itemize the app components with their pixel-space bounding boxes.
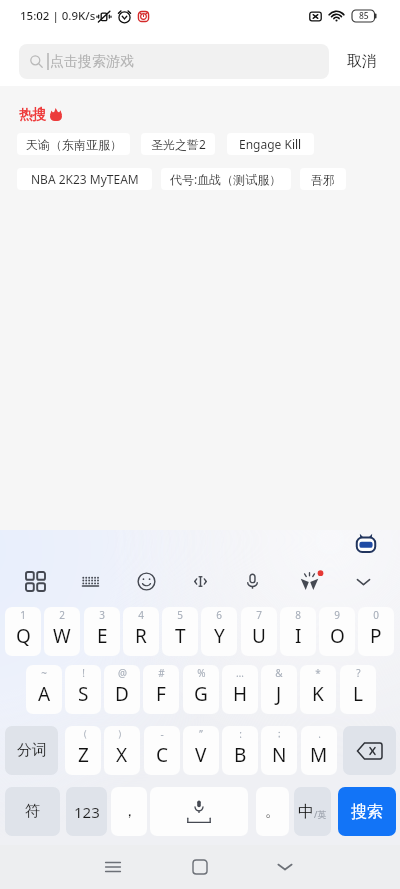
staticText: （: [78, 727, 88, 740]
staticText: 分词: [17, 741, 47, 760]
button[interactable]: .: [301, 726, 337, 775]
button[interactable]: Emoji: [131, 566, 161, 596]
button[interactable]: Edit text: [185, 566, 215, 596]
button[interactable]: 0: [358, 607, 394, 656]
button[interactable]: ?: [340, 665, 376, 714]
button[interactable]: ，: [111, 787, 147, 836]
staticText: H: [233, 681, 248, 707]
staticText: 取消: [347, 52, 377, 71]
staticText: G: [194, 681, 208, 707]
button[interactable]: 中: [294, 787, 331, 836]
button[interactable]: 1: [5, 607, 41, 656]
button[interactable]: 点击搜索游戏: [19, 44, 329, 79]
staticText: B: [234, 742, 247, 768]
button[interactable]: Delete: [343, 726, 396, 775]
staticText: 符: [25, 802, 40, 821]
button[interactable]: ；: [261, 726, 297, 775]
button[interactable]: 符: [5, 787, 60, 836]
button[interactable]: *: [300, 665, 336, 714]
staticText: I: [295, 623, 302, 649]
button[interactable]: :: [222, 726, 258, 775]
button[interactable]: Hide keyboard: [348, 566, 378, 596]
staticText: 4: [138, 608, 144, 622]
button[interactable]: 5: [162, 607, 198, 656]
button[interactable]: Engage Kill: [227, 133, 314, 155]
staticText: S: [78, 681, 89, 707]
button[interactable]: #: [143, 665, 179, 714]
staticText: /英: [314, 808, 327, 820]
button[interactable]: 取消: [340, 44, 384, 79]
button[interactable]: 123: [66, 787, 107, 836]
button[interactable]: 4: [123, 607, 159, 656]
button[interactable]: -: [144, 726, 180, 775]
staticText: 圣光之誓2: [151, 136, 206, 152]
button[interactable]: 。: [256, 787, 289, 836]
button[interactable]: 天谕（东南亚服）: [17, 133, 130, 155]
button[interactable]: 2: [44, 607, 80, 656]
staticText: 7: [256, 608, 262, 622]
button[interactable]: ）: [104, 726, 140, 775]
button[interactable]: Celebrate: [294, 566, 324, 596]
button[interactable]: 7: [241, 607, 277, 656]
staticText: E: [97, 623, 108, 649]
staticText: 123: [74, 802, 100, 822]
staticText: T: [175, 623, 186, 649]
staticText: A: [38, 681, 51, 707]
button[interactable]: 搜索: [338, 787, 396, 836]
staticText: N: [272, 742, 287, 768]
staticText: L: [353, 681, 363, 707]
button[interactable]: !: [65, 665, 101, 714]
staticText: :: [239, 727, 242, 741]
button[interactable]: Input method logo: [355, 532, 377, 554]
button[interactable]: ”: [183, 726, 219, 775]
button[interactable]: @: [104, 665, 140, 714]
button[interactable]: 吾邪: [300, 168, 346, 190]
staticText: 5: [177, 608, 183, 622]
button[interactable]: …: [222, 665, 258, 714]
button[interactable]: Keyboard layout: [75, 566, 105, 596]
staticText: ）: [117, 727, 127, 740]
staticText: 2: [59, 608, 65, 622]
staticText: D: [115, 681, 129, 707]
staticText: ?: [356, 666, 361, 680]
staticText: Q: [16, 623, 31, 649]
button[interactable]: Home: [182, 849, 218, 885]
staticText: -: [160, 727, 164, 741]
button[interactable]: （: [65, 726, 101, 775]
staticText: 热搜: [19, 106, 46, 123]
staticText: 9: [334, 608, 340, 622]
button[interactable]: Back: [267, 849, 303, 885]
staticText: 。: [265, 802, 280, 821]
button[interactable]: 3: [84, 607, 120, 656]
staticText: %: [197, 666, 206, 680]
button[interactable]: Apps: [20, 566, 50, 596]
staticText: R: [135, 623, 147, 649]
button[interactable]: &: [261, 665, 297, 714]
staticText: ~: [41, 666, 47, 680]
button[interactable]: NBA 2K23 MyTEAM: [17, 168, 152, 190]
button[interactable]: Space: [150, 787, 248, 836]
button[interactable]: Recents: [95, 849, 131, 885]
button[interactable]: 分词: [5, 726, 58, 775]
button[interactable]: %: [183, 665, 219, 714]
staticText: 6: [216, 608, 222, 622]
button[interactable]: 9: [319, 607, 355, 656]
staticText: @: [118, 666, 127, 680]
staticText: &: [275, 666, 283, 680]
staticText: 中: [298, 802, 314, 822]
staticText: 85: [359, 10, 369, 22]
staticText: ，: [122, 802, 137, 821]
button[interactable]: 代号:血战（测试服）: [161, 168, 291, 190]
staticText: X: [116, 742, 128, 768]
button[interactable]: Voice input: [237, 566, 267, 596]
button[interactable]: ~: [26, 665, 62, 714]
button[interactable]: 圣光之誓2: [141, 133, 215, 155]
button[interactable]: 6: [201, 607, 237, 656]
button[interactable]: 8: [280, 607, 316, 656]
staticText: O: [330, 623, 345, 649]
staticText: W: [53, 623, 71, 649]
staticText: 点击搜索游戏: [50, 53, 134, 71]
staticText: 天谕（东南亚服）: [26, 137, 122, 152]
staticText: P: [370, 623, 382, 649]
staticText: Y: [214, 623, 225, 649]
